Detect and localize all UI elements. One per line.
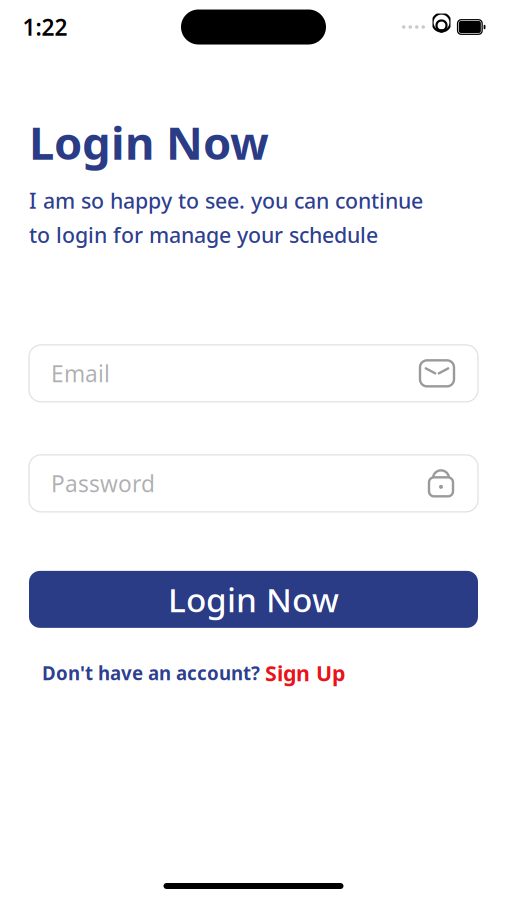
staticText: I am so happy to see. you can continue	[29, 186, 423, 214]
staticText: to login for manage your schedule	[29, 220, 378, 249]
staticText: Password	[51, 468, 155, 498]
button[interactable]: Password	[29, 455, 478, 512]
staticText: Login Now	[29, 112, 269, 172]
button[interactable]: Don't have an account?	[42, 651, 465, 695]
button[interactable]: Email	[29, 345, 478, 402]
staticText: Don't have an account?	[42, 661, 260, 685]
staticText: Email	[51, 358, 110, 388]
staticText: 1:22	[22, 12, 67, 42]
staticText: Sign Up	[265, 659, 345, 687]
button[interactable]: Login Now	[29, 571, 478, 628]
staticText: Login Now	[168, 577, 339, 621]
